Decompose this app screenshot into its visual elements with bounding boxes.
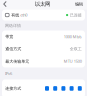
staticText: 通信方式: [5, 46, 21, 51]
staticText: 编辑: [75, 2, 83, 6]
staticText: 已连接: [70, 13, 82, 17]
button[interactable]: 连接方式: [2, 79, 85, 96]
staticText: 1000 Mb/s: [64, 34, 82, 39]
staticText: 全双工: [70, 46, 82, 51]
staticText: 以太网: [35, 1, 50, 7]
staticText: 带宽: [5, 34, 13, 39]
staticText: MTU 1500: [64, 59, 82, 64]
button[interactable]: 最大传输单元: [2, 55, 85, 67]
staticText: 有线: [11, 13, 19, 17]
staticText: 最大传输单元: [5, 59, 29, 64]
staticText: 连接方式: [5, 86, 21, 91]
button[interactable]: 返回: [0, 0, 10, 9]
button[interactable]: 有线: [2, 9, 85, 20]
staticText: 网络详情: [5, 23, 21, 28]
button[interactable]: 带宽: [2, 30, 85, 43]
button[interactable]: 编辑: [75, 0, 87, 9]
staticText: eth0: [19, 12, 27, 18]
button[interactable]: 通信方式: [2, 43, 85, 55]
staticText: IPv6: [5, 71, 12, 76]
